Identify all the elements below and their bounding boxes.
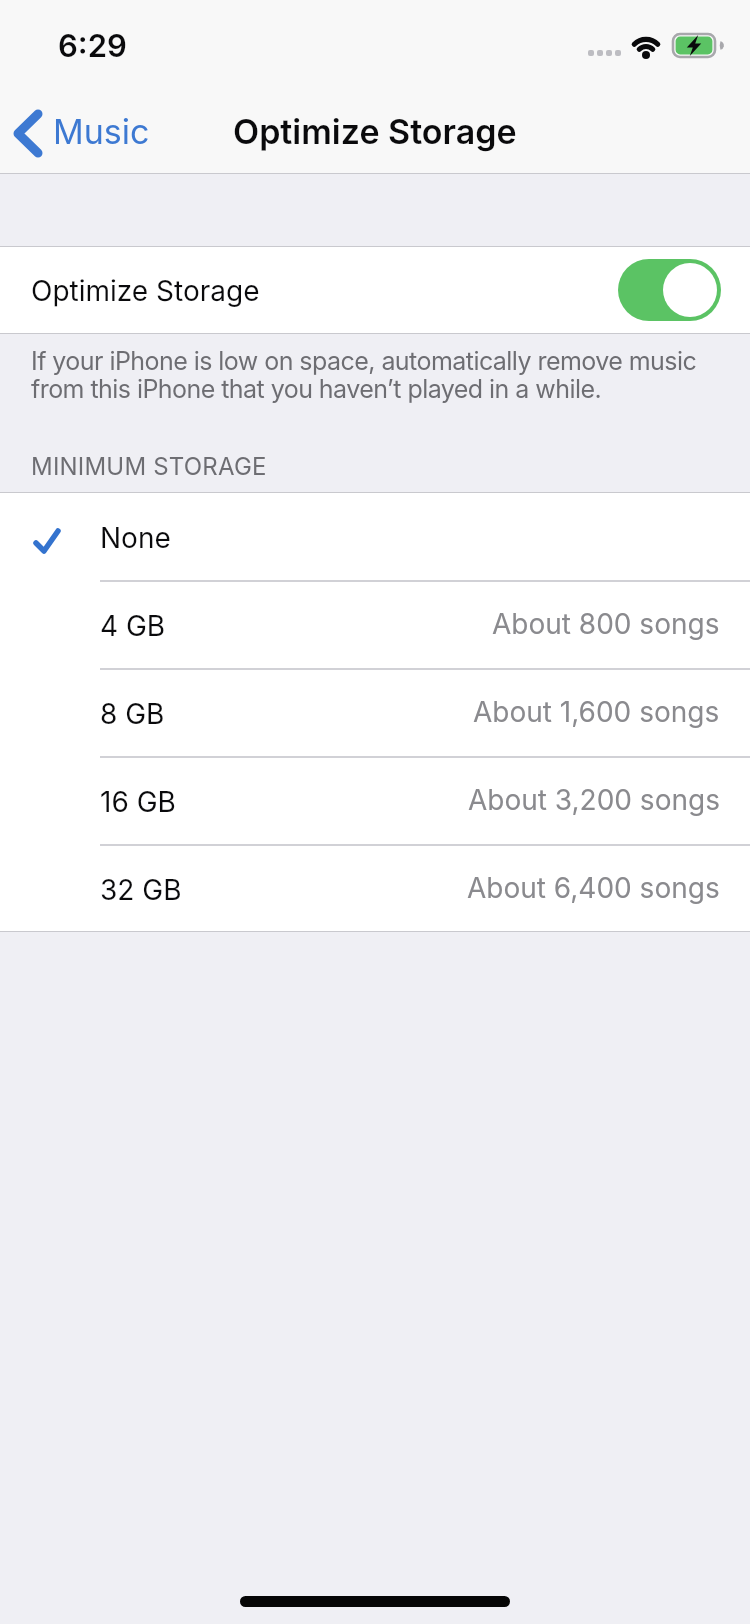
staticText: Music: [53, 111, 150, 152]
button[interactable]: None: [0, 492, 750, 580]
button[interactable]: 8 GB: [0, 668, 750, 756]
staticText: Optimize Storage: [233, 111, 517, 152]
staticText: About 800 songs: [492, 607, 720, 641]
staticText: 6:29: [58, 27, 127, 65]
staticText: 8 GB: [100, 697, 165, 731]
staticText: 4 GB: [100, 609, 166, 643]
button[interactable]: 32 GB: [0, 844, 750, 932]
staticText: If your iPhone is low on space, automati…: [31, 346, 697, 404]
button[interactable]: Music: [0, 100, 160, 166]
button[interactable]: [618, 259, 721, 321]
staticText: MINIMUM STORAGE: [31, 452, 267, 481]
staticText: Optimize Storage: [31, 274, 260, 308]
staticText: 32 GB: [100, 873, 182, 907]
button[interactable]: Optimize Storage: [0, 246, 750, 334]
button[interactable]: 16 GB: [0, 756, 750, 844]
staticText: About 6,400 songs: [467, 871, 720, 905]
staticText: None: [100, 521, 171, 555]
staticText: About 1,600 songs: [473, 695, 720, 729]
staticText: 16 GB: [100, 785, 176, 819]
button[interactable]: 4 GB: [0, 580, 750, 668]
staticText: About 3,200 songs: [468, 783, 720, 817]
